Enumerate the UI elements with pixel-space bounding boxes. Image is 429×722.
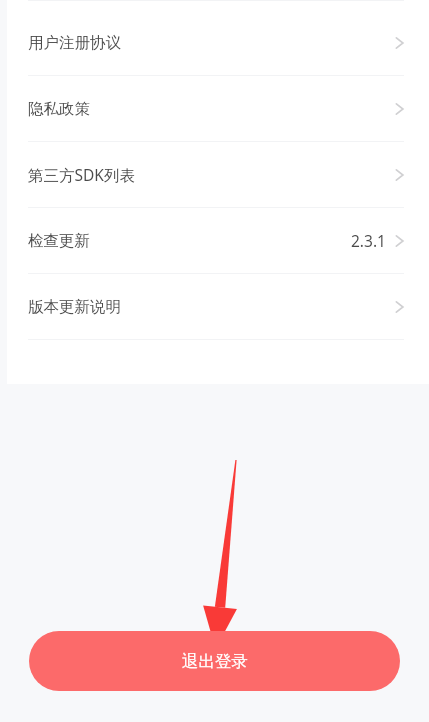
staticText: 退出登录 bbox=[182, 651, 248, 672]
staticText: 第三方SDK列表 bbox=[28, 164, 135, 185]
button[interactable]: 退出登录 bbox=[29, 631, 400, 691]
staticText: 版本更新说明 bbox=[28, 297, 121, 317]
staticText: 检查更新 bbox=[28, 231, 90, 251]
button[interactable]: 第三方SDK列表 bbox=[0, 142, 429, 208]
staticText: 隐私政策 bbox=[28, 99, 90, 119]
button[interactable]: 用户注册协议 bbox=[0, 10, 429, 76]
button[interactable]: 版本更新说明 bbox=[0, 274, 429, 340]
button[interactable]: 检查更新 bbox=[0, 208, 429, 274]
staticText: 2.3.1 bbox=[351, 230, 386, 251]
staticText: 用户注册协议 bbox=[28, 33, 121, 53]
button[interactable]: 隐私政策 bbox=[0, 76, 429, 142]
